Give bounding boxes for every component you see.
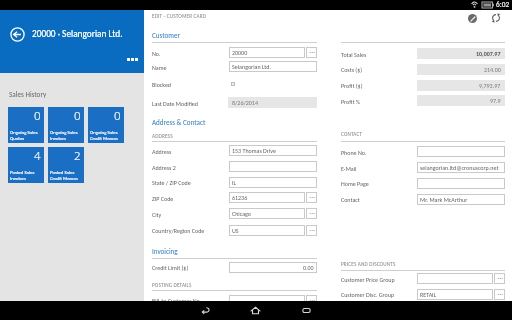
staticText: Phone No.: [341, 149, 367, 156]
button[interactable]: Lookup: [306, 225, 317, 236]
button[interactable]: [341, 146, 505, 162]
button[interactable]: [341, 64, 505, 80]
staticText: selangorian.ltd@cronuscorp.net: [420, 164, 499, 171]
staticText: Ongoing Sales: [50, 129, 78, 135]
staticText: Sales History: [9, 90, 47, 99]
button[interactable]: [152, 61, 317, 77]
staticText: Profit ($): [341, 82, 363, 89]
staticText: Ongoing Sales: [10, 129, 38, 135]
button[interactable]: [152, 192, 317, 208]
staticText: 0.00: [303, 264, 314, 271]
button[interactable]: [152, 262, 317, 278]
staticText: Last Date Modified: [152, 100, 198, 107]
button[interactable]: Recent apps: [296, 301, 316, 320]
staticText: CONTACT: [341, 131, 363, 137]
staticText: Address 2: [152, 164, 176, 171]
staticText: 20000 · Selangorian Ltd.: [32, 28, 123, 39]
staticText: State / ZIP Code: [152, 179, 191, 186]
staticText: Address: [152, 148, 172, 155]
button[interactable]: Back: [7, 24, 28, 45]
staticText: Invoicing: [152, 247, 178, 256]
button[interactable]: More options: [121, 51, 142, 68]
staticText: Bill-to Customer No.: [152, 297, 202, 304]
button[interactable]: [152, 208, 317, 224]
button[interactable]: Lookup: [306, 47, 317, 58]
button[interactable]: Lookup: [306, 295, 317, 306]
staticText: Total Sales: [341, 51, 367, 58]
button[interactable]: Edit: [464, 10, 480, 26]
button[interactable]: [152, 295, 317, 311]
button[interactable]: [341, 178, 505, 194]
staticText: 214.00: [484, 66, 501, 73]
staticText: Credit Memos: [90, 135, 118, 141]
button[interactable]: [152, 177, 317, 193]
staticText: No.: [152, 50, 161, 57]
button[interactable]: 2: [48, 147, 84, 183]
staticText: Contact: [341, 196, 360, 203]
button[interactable]: 0: [8, 107, 44, 143]
staticText: 0: [34, 108, 41, 124]
button[interactable]: Back: [195, 301, 215, 320]
button[interactable]: [152, 97, 317, 113]
button[interactable]: [152, 145, 317, 161]
staticText: City: [152, 211, 162, 218]
button[interactable]: [341, 162, 505, 178]
staticText: US: [232, 227, 239, 234]
staticText: Home Page: [341, 180, 369, 187]
staticText: Customer Price Group: [341, 276, 395, 283]
button[interactable]: Lookup: [306, 208, 317, 219]
staticText: 0: [74, 108, 81, 124]
staticText: 153 Thomas Drive: [232, 147, 276, 154]
button[interactable]: Home: [245, 301, 265, 320]
staticText: 4: [34, 148, 41, 164]
staticText: Profit %: [341, 98, 361, 105]
staticText: 6:02: [496, 0, 510, 9]
button[interactable]: Refresh: [488, 10, 504, 26]
button[interactable]: [341, 289, 505, 305]
button[interactable]: [341, 273, 505, 289]
staticText: Posted Sales: [50, 169, 75, 175]
staticText: Costs ($): [341, 66, 363, 73]
staticText: 20000: [232, 49, 248, 56]
staticText: PRICES AND DISCOUNTS: [341, 261, 396, 267]
staticText: 0: [114, 108, 121, 124]
button[interactable]: [341, 48, 505, 64]
staticText: Quotes: [10, 135, 25, 141]
staticText: Address & Contact: [152, 118, 206, 127]
staticText: 97.9: [490, 97, 501, 104]
button[interactable]: [152, 47, 317, 63]
staticText: ADDRESS: [152, 133, 173, 139]
staticText: 61236: [232, 194, 248, 201]
button[interactable]: Lookup: [494, 289, 505, 300]
staticText: IL: [232, 179, 237, 186]
button[interactable]: Lookup: [306, 192, 317, 203]
button[interactable]: 0: [88, 107, 124, 143]
button[interactable]: 4: [8, 147, 44, 183]
staticText: Name: [152, 64, 167, 71]
button[interactable]: [341, 95, 505, 111]
button[interactable]: 0: [48, 107, 84, 143]
button[interactable]: [152, 79, 317, 93]
button[interactable]: [341, 194, 505, 210]
staticText: Invoices: [50, 135, 66, 141]
staticText: RETAIL: [420, 291, 437, 298]
button[interactable]: Lookup: [494, 273, 505, 284]
staticText: 9,793.97: [479, 82, 501, 89]
staticText: POSTING DETAILS: [152, 282, 192, 288]
staticText: Blocked: [152, 81, 172, 88]
staticText: Credit Memos: [50, 175, 78, 181]
staticText: Chicago: [232, 210, 252, 217]
button[interactable]: [152, 161, 317, 177]
staticText: 8/26/2014: [232, 99, 258, 106]
staticText: Posted Sales: [10, 169, 35, 175]
button[interactable]: [152, 225, 317, 241]
button[interactable]: [341, 80, 505, 96]
staticText: 10,007.97: [476, 50, 501, 57]
staticText: Ongoing Sales: [90, 129, 118, 135]
staticText: Mr. Mark McArthur: [420, 196, 468, 203]
staticText: Country/Region Code: [152, 227, 205, 234]
staticText: ZIP Code: [152, 195, 174, 202]
staticText: E-Mail: [341, 165, 357, 172]
staticText: Invoices: [10, 175, 26, 181]
staticText: Customer Disc. Group: [341, 291, 395, 298]
